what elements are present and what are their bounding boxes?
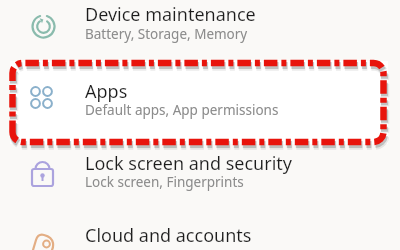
staticText: Battery, Storage, Memory <box>85 25 248 43</box>
button[interactable]: Device maintenance <box>0 0 400 61</box>
staticText: Default apps, App permissions <box>85 101 279 119</box>
staticText: Lock screen and security <box>85 151 292 176</box>
staticText: Device maintenance <box>85 2 256 27</box>
staticText: Cloud and accounts <box>85 223 252 248</box>
button[interactable]: Apps <box>0 61 400 134</box>
button[interactable]: Cloud and accounts <box>0 207 400 250</box>
staticText: Lock screen, Fingerprints <box>85 173 244 191</box>
staticText: Apps <box>85 79 128 104</box>
button[interactable]: Lock screen and security <box>0 134 400 207</box>
